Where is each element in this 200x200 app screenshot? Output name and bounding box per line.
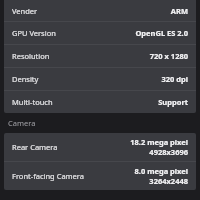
staticText: 720 x 1280 — [149, 51, 188, 61]
staticText: Density — [12, 74, 39, 84]
staticText: GPU Version — [12, 28, 56, 38]
staticText: Front-facing Camera — [12, 171, 84, 181]
button[interactable]: Front-facing Camera — [4, 162, 196, 190]
button[interactable]: Vender — [4, 0, 196, 21]
button[interactable]: Multi-touch — [4, 91, 196, 113]
staticText: Rear Camera — [12, 142, 58, 152]
staticText: 3264x2448 — [149, 176, 188, 186]
button[interactable]: Density — [4, 68, 196, 90]
staticText: 4928x3696 — [149, 147, 188, 157]
staticText: Camera — [8, 118, 36, 128]
staticText: ARM — [170, 6, 188, 16]
staticText: Resolution — [12, 51, 50, 61]
staticText: OpenGL ES 2.0 — [135, 28, 188, 38]
staticText: Vender — [12, 6, 38, 16]
button[interactable]: Rear Camera — [4, 133, 196, 161]
staticText: 18.2 mega pixel — [130, 137, 188, 147]
button[interactable]: GPU Version — [4, 22, 196, 44]
button[interactable]: Resolution — [4, 45, 196, 67]
staticText: 320 dpi — [161, 74, 188, 84]
staticText: Multi-touch — [12, 97, 53, 107]
staticText: Support — [158, 97, 188, 107]
staticText: 8.0 mega pixel — [134, 166, 188, 176]
